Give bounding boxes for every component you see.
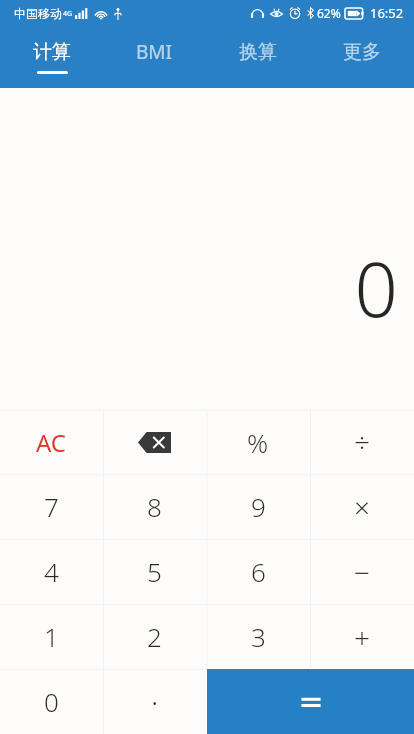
button[interactable]: 1 — [0, 604, 103, 669]
button[interactable]: % — [206, 410, 310, 474]
staticText: AC — [36, 426, 67, 459]
button[interactable]: Backspace — [103, 410, 206, 474]
button[interactable]: 9 — [206, 474, 310, 539]
staticText: BMI — [136, 39, 173, 65]
staticText: 计算 — [33, 40, 71, 64]
button[interactable]: All clear — [0, 410, 103, 474]
button[interactable]: 2 — [103, 604, 206, 669]
staticText: 6 — [251, 554, 266, 589]
button[interactable]: BMI — [103, 26, 206, 88]
staticText: · — [151, 681, 159, 722]
staticText: 1 — [44, 619, 59, 654]
staticText: 4 — [44, 554, 59, 589]
staticText: 中国移动 — [14, 6, 62, 21]
button[interactable]: 更多 — [310, 26, 414, 88]
staticText: 0 — [354, 236, 398, 340]
staticText: 2 — [147, 619, 162, 654]
button[interactable] — [207, 669, 414, 734]
staticText: 8 — [147, 489, 162, 524]
button[interactable]: 计算 — [0, 26, 103, 88]
button[interactable]: 8 — [103, 474, 206, 539]
button[interactable]: 5 — [103, 539, 206, 604]
button[interactable]: × — [310, 474, 414, 539]
staticText: 62% — [317, 5, 341, 21]
button[interactable]: 3 — [206, 604, 310, 669]
staticText: 更多 — [343, 40, 381, 64]
staticText: 3 — [251, 619, 266, 654]
staticText: + — [354, 618, 370, 656]
staticText: − — [354, 553, 370, 591]
staticText: 0 — [44, 684, 59, 719]
staticText: 换算 — [239, 40, 277, 64]
staticText: 9 — [251, 489, 266, 524]
button[interactable]: 6 — [206, 539, 310, 604]
staticText: 16:52 — [370, 4, 404, 22]
button[interactable]: 换算 — [206, 26, 310, 88]
button[interactable]: 7 — [0, 474, 103, 539]
staticText: 7 — [44, 489, 59, 524]
button[interactable]: 0 — [0, 669, 103, 734]
staticText: 5 — [147, 554, 162, 589]
staticText: 4G — [63, 9, 73, 19]
staticText: × — [354, 488, 370, 526]
staticText: % — [247, 425, 269, 460]
button[interactable]: − — [310, 539, 414, 604]
button[interactable]: 4 — [0, 539, 103, 604]
button[interactable]: + — [310, 604, 414, 669]
button[interactable]: · — [103, 669, 207, 734]
staticText: ÷ — [354, 423, 370, 461]
button[interactable]: ÷ — [310, 410, 414, 474]
